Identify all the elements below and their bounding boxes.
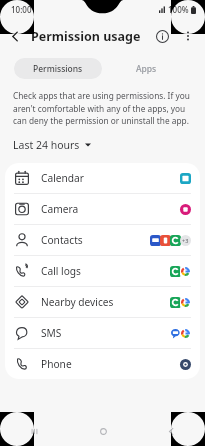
button[interactable]: About permissions xyxy=(149,23,175,49)
button[interactable]: Call logs xyxy=(5,256,200,286)
button[interactable]: Contacts xyxy=(5,225,200,255)
button[interactable]: Phone xyxy=(5,349,200,379)
staticText: Apps xyxy=(136,63,157,75)
button[interactable]: Apps xyxy=(102,58,191,79)
staticText: Contacts xyxy=(41,233,83,247)
staticText: Check apps that are using permissions. I… xyxy=(13,90,191,126)
staticText: +3 xyxy=(182,237,189,244)
staticText: Nearby devices xyxy=(41,295,114,309)
button[interactable]: Navigate up xyxy=(0,21,30,51)
button[interactable]: Last 24 hours xyxy=(11,136,93,154)
button[interactable]: Calendar xyxy=(5,163,200,193)
staticText: Phone xyxy=(41,357,72,371)
staticText: 10:00 xyxy=(11,4,32,15)
staticText: 100% xyxy=(168,4,189,15)
button[interactable]: Home xyxy=(69,416,137,446)
button[interactable]: Camera xyxy=(5,194,200,224)
button[interactable]: Nearby devices xyxy=(5,287,200,317)
staticText: Calendar xyxy=(41,171,85,185)
button[interactable]: Permissions xyxy=(14,58,102,79)
staticText: Camera xyxy=(41,202,79,216)
button[interactable]: SMS xyxy=(5,318,200,348)
button[interactable]: Recent apps xyxy=(0,416,69,446)
staticText: Last 24 hours xyxy=(13,138,80,152)
button[interactable]: More options xyxy=(175,23,201,49)
staticText: Call logs xyxy=(41,264,81,278)
staticText: Permissions xyxy=(33,63,83,75)
staticText: Permission usage xyxy=(31,28,141,45)
staticText: SMS xyxy=(41,326,62,340)
button[interactable]: Back xyxy=(137,416,205,446)
